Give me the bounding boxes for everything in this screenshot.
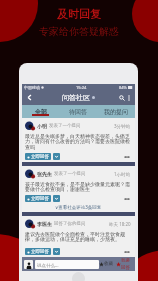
staticText: 待回答: [69, 108, 87, 116]
staticText: 建议先去医院做个全面检查，平时注意饮食规律，多做运动，保证充足的睡眠，少熬夜。: [25, 231, 131, 243]
button[interactable]: 我要回答: [116, 258, 133, 270]
button[interactable]: More options: [123, 249, 131, 255]
staticText: 孩子最近食欲不振，是不是缺少微量元素呢？需要做什么检查项目，谢谢医生: [25, 181, 131, 193]
staticText: 全部: [35, 108, 47, 116]
button[interactable]: Back: [24, 92, 35, 103]
button[interactable]: 我的提问: [97, 105, 135, 118]
staticText: 84%: [119, 85, 127, 90]
staticText: 最近总是失眠多梦，白天精神状态很差，头痛乏力，请问有什么改善的方法吗？需要去医院…: [25, 133, 131, 151]
staticText: ∨查看社会评论3条回复: [55, 204, 102, 210]
button[interactable]: 收藏: [99, 261, 113, 267]
staticText: 发表了一个提问: [54, 171, 86, 177]
button[interactable]: More options: [123, 196, 131, 202]
button[interactable]: Collapse: [53, 248, 60, 255]
button[interactable]: 立即回答: [25, 195, 51, 202]
button[interactable]: Search and more: [119, 95, 132, 101]
button[interactable]: More options: [123, 154, 131, 160]
staticText: 及时回复: [57, 7, 101, 21]
staticText: 15:24: [76, 85, 87, 90]
button[interactable]: ∨查看社会评论3条回复: [25, 204, 131, 210]
button[interactable]: Collapse: [53, 153, 60, 160]
staticText: 中国移动: [24, 85, 40, 90]
staticText: 收藏: [104, 261, 113, 267]
staticText: 李医生: [37, 221, 52, 227]
button[interactable]: 全部: [22, 105, 59, 118]
staticText: 立即回答: [31, 154, 49, 160]
button[interactable]: Home: [72, 272, 85, 281]
staticText: 3分钟前: [114, 123, 131, 129]
button[interactable]: 立即回答: [25, 153, 51, 160]
staticText: 专家给你答疑解惑: [39, 25, 119, 38]
button[interactable]: Profile: [24, 260, 33, 269]
staticText: 立即回答: [31, 249, 49, 255]
staticText: 我要回答: [121, 258, 133, 270]
staticText: 小明: [37, 123, 47, 129]
button[interactable]: 待回答: [59, 105, 97, 118]
staticText: 说点什么…: [37, 262, 59, 268]
staticText: 昨天 18:20: [109, 221, 131, 227]
staticText: 1小时前: [114, 171, 131, 177]
staticText: 发表了一个提问: [49, 123, 81, 129]
staticText: 张先生: [37, 171, 52, 177]
staticText: 问答社区: [62, 93, 90, 102]
staticText: 立即回答: [31, 196, 49, 202]
button[interactable]: 立即回答: [25, 248, 51, 255]
staticText: 回答了你的提问: [54, 221, 86, 227]
button[interactable]: Collapse: [53, 195, 60, 202]
staticText: 我的提问: [104, 108, 128, 116]
button[interactable]: 说点什么…: [35, 260, 99, 269]
